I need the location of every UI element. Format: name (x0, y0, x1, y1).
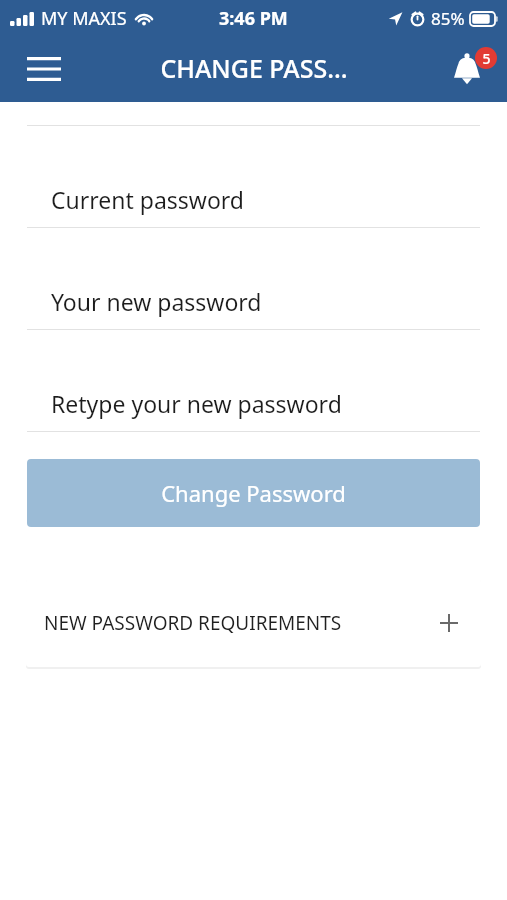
button[interactable]: Open navigation menu (16, 44, 72, 94)
button[interactable]: Current password (0, 184, 507, 228)
staticText: 85% (431, 7, 465, 30)
staticText: 3:46 PM (219, 6, 288, 31)
staticText: 5 (482, 49, 491, 68)
staticText: NEW PASSWORD REQUIREMENTS (44, 610, 342, 636)
staticText: MY MAXIS (41, 6, 127, 31)
staticText: Current password (51, 184, 245, 215)
button[interactable]: NEW PASSWORD REQUIREMENTS (26, 579, 481, 667)
button[interactable]: Your new password (0, 286, 507, 330)
staticText: Your new password (51, 286, 262, 317)
staticText: Retype your new password (51, 388, 342, 419)
button[interactable]: Change Password (27, 459, 480, 527)
button[interactable]: Retype your new password (0, 388, 507, 432)
staticText: Change Password (161, 478, 346, 508)
button[interactable]: Notifications, 5 unread (439, 41, 499, 97)
staticText: CHANGE PASS... (160, 51, 348, 85)
